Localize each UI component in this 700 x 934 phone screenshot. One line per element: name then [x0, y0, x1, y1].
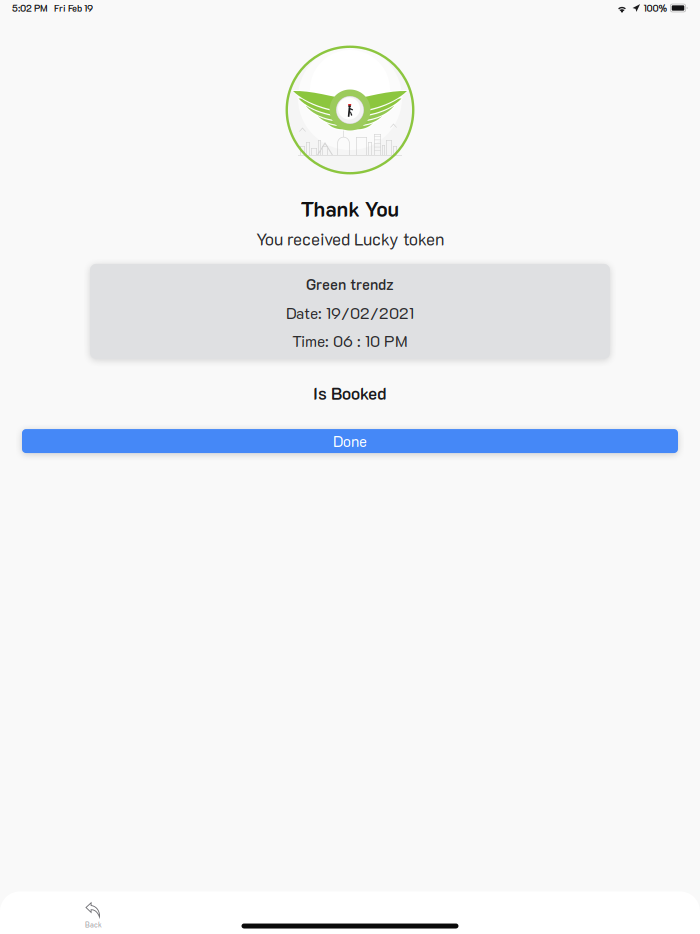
- staticText: 5:02 PM: [12, 2, 48, 14]
- staticText: Done: [333, 431, 367, 451]
- button[interactable]: Done: [22, 429, 678, 453]
- staticText: Thank You: [300, 195, 399, 222]
- staticText: Time: 06 : 10 PM: [292, 331, 408, 351]
- staticText: You received Lucky token: [256, 228, 444, 250]
- staticText: Fri Feb 19: [54, 2, 93, 14]
- staticText: Green trendz: [306, 275, 394, 294]
- button[interactable]: Back: [71, 896, 116, 934]
- staticText: Back: [85, 920, 102, 929]
- staticText: 100%: [643, 2, 667, 14]
- staticText: Is Booked: [313, 382, 387, 404]
- staticText: Date: 19/02/2021: [286, 303, 414, 323]
